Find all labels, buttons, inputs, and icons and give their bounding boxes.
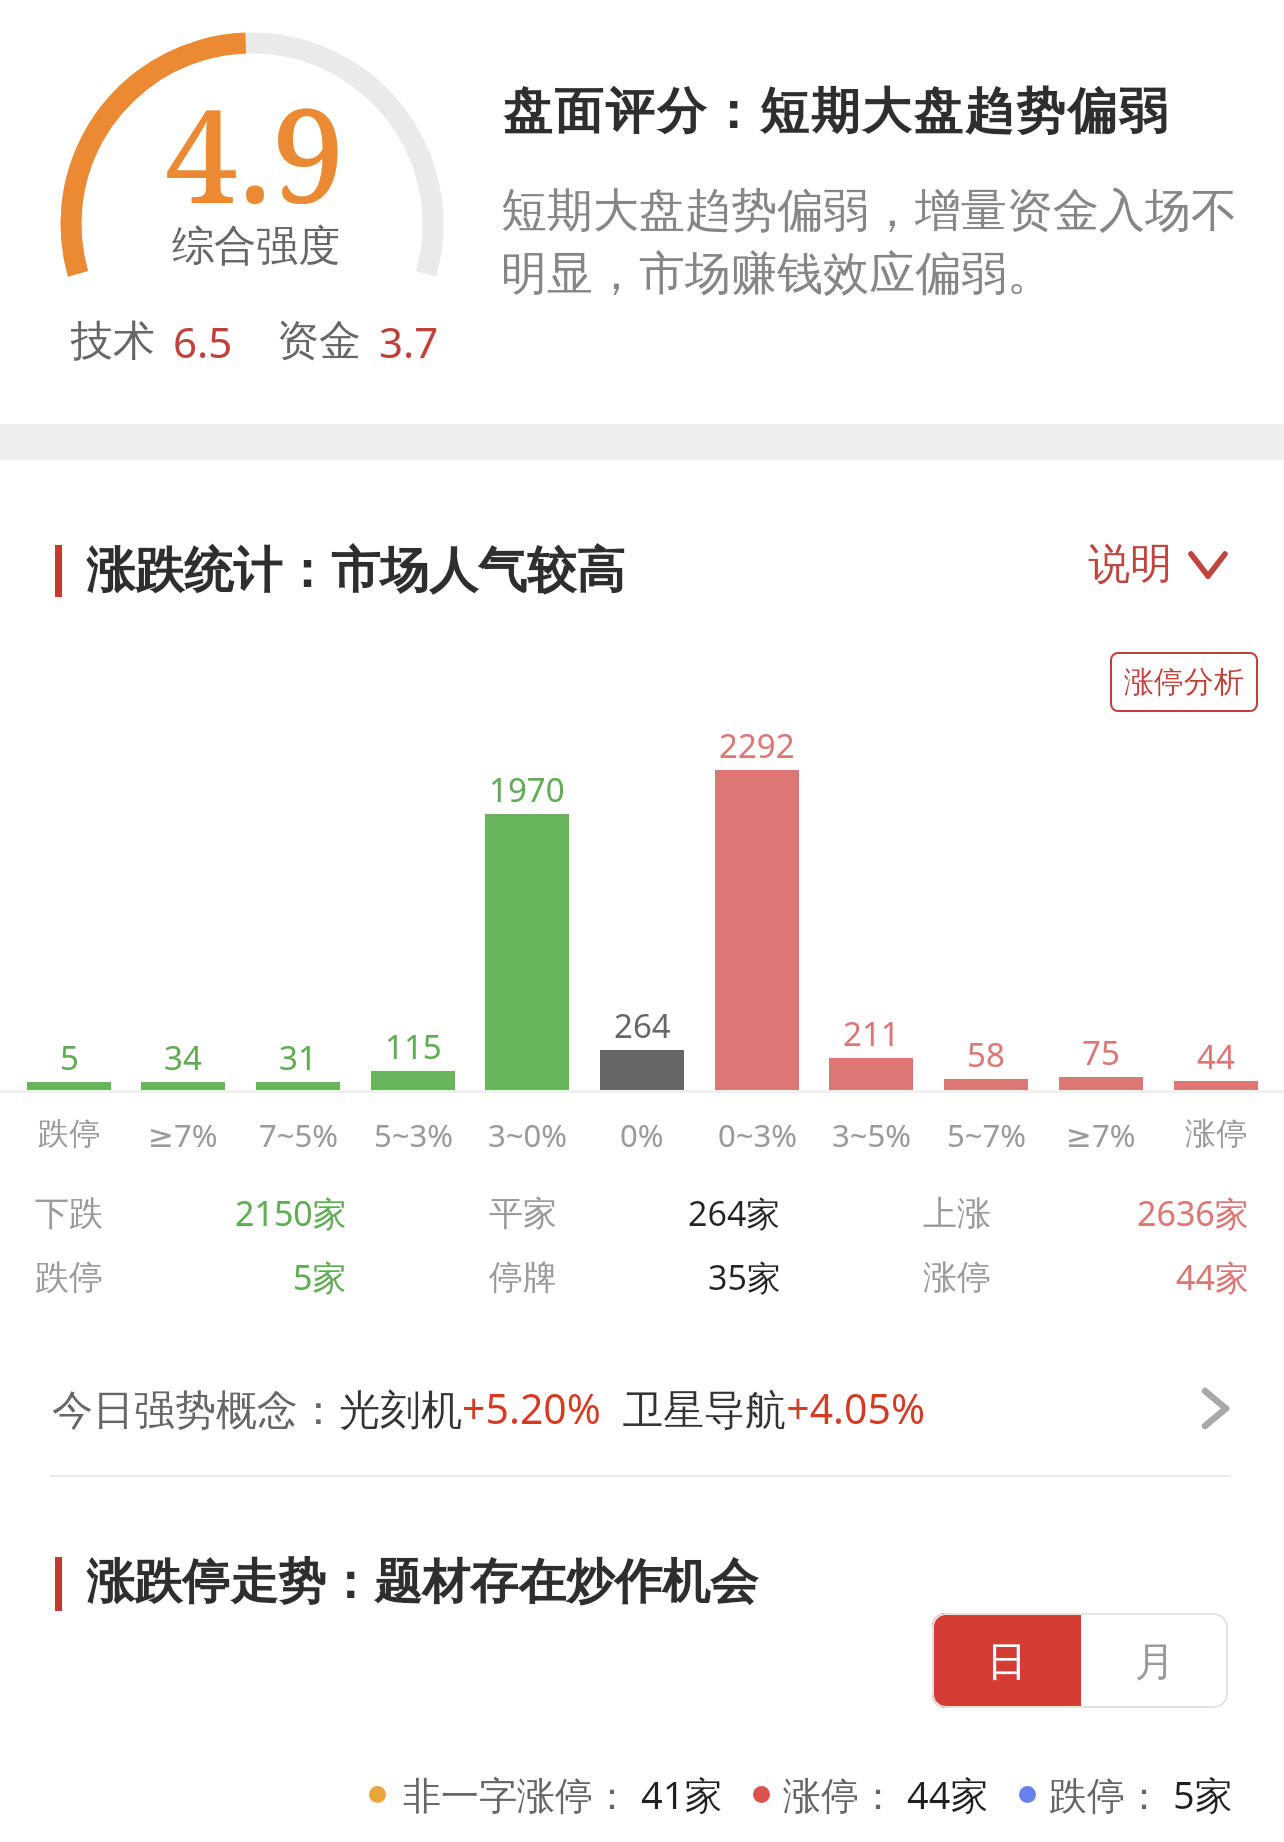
staticText: ≥7%: [148, 1114, 218, 1156]
staticText: 涨跌统计：市场人气较高: [86, 540, 625, 602]
button[interactable]: 涨停分析: [1110, 652, 1258, 712]
staticText: 今日强势概念：光刻机+5.20% 卫星导航+4.05%: [52, 1380, 926, 1436]
staticText: 5家: [293, 1254, 347, 1300]
staticText: 58: [967, 1032, 1005, 1077]
staticText: 4.9: [165, 64, 345, 241]
staticText: 下跌: [35, 1192, 103, 1235]
staticText: 跌停: [35, 1256, 103, 1299]
staticText: 涨停：: [783, 1768, 907, 1820]
staticText: 停牌: [489, 1256, 557, 1299]
staticText: 3~5%: [832, 1114, 911, 1156]
staticText: 说明: [1088, 538, 1172, 591]
staticText: 5: [60, 1035, 79, 1080]
button[interactable]: 说明: [1082, 530, 1234, 599]
staticText: 115: [385, 1024, 442, 1069]
staticText: 月: [1135, 1636, 1175, 1686]
staticText: 35家: [708, 1254, 781, 1300]
staticText: ≥7%: [1066, 1114, 1136, 1156]
staticText: 7~5%: [259, 1114, 338, 1156]
staticText: 涨停分析: [1124, 663, 1244, 701]
staticText: 44: [1197, 1034, 1235, 1079]
staticText: 短期大盘趋势偏弱，增量资金入场不明显，市场赚钱效应偏弱。: [501, 182, 1241, 303]
staticText: 44家: [1176, 1254, 1249, 1300]
staticText: 涨停: [1185, 1114, 1247, 1153]
staticText: 6.5: [173, 313, 233, 370]
staticText: 非一字涨停：: [403, 1768, 641, 1820]
staticText: 34: [164, 1035, 202, 1080]
staticText: 264: [614, 1003, 671, 1048]
staticText: 41家: [641, 1768, 723, 1820]
staticText: 跌停：: [1049, 1768, 1173, 1820]
staticText: 1970: [489, 767, 565, 812]
staticText: 264家: [688, 1190, 781, 1236]
staticText: 涨跌停走势：题材存在炒作机会: [86, 1552, 758, 1612]
staticText: 技术: [71, 315, 155, 368]
button[interactable]: 今日强势概念：光刻机+5.20% 卫星导航+4.05%: [0, 1352, 1284, 1464]
staticText: 上涨: [923, 1192, 991, 1235]
staticText: 综合强度: [172, 220, 340, 273]
other: 展开说明: [1188, 551, 1228, 579]
staticText: 44家: [907, 1768, 989, 1820]
staticText: 涨停: [923, 1256, 991, 1299]
staticText: 0~3%: [718, 1114, 797, 1156]
staticText: 资金: [277, 315, 361, 368]
staticText: 0%: [620, 1114, 664, 1156]
staticText: 2150家: [235, 1190, 347, 1236]
staticText: 3.7: [379, 313, 439, 370]
button[interactable]: 跌停: [0, 1254, 1284, 1300]
button[interactable]: 下跌: [0, 1190, 1284, 1236]
staticText: 2636家: [1137, 1190, 1249, 1236]
button[interactable]: 日: [932, 1613, 1081, 1708]
button[interactable]: 月: [1081, 1613, 1228, 1708]
staticText: 盘面评分：短期大盘趋势偏弱: [503, 81, 1170, 143]
staticText: 31: [279, 1035, 317, 1080]
staticText: 3~0%: [488, 1114, 567, 1156]
staticText: 日: [987, 1636, 1027, 1686]
other: 更多: [1202, 1388, 1229, 1429]
staticText: 跌停: [38, 1114, 100, 1153]
staticText: 5~3%: [374, 1114, 453, 1156]
staticText: 5家: [1173, 1768, 1233, 1820]
staticText: 2292: [719, 723, 795, 768]
staticText: 5~7%: [947, 1114, 1026, 1156]
staticText: 平家: [489, 1192, 557, 1235]
staticText: 75: [1082, 1030, 1120, 1075]
staticText: 211: [843, 1011, 900, 1056]
